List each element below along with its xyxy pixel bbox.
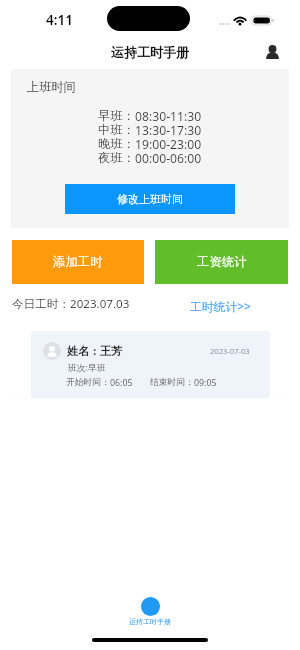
staticText: 13:30-17:30: [135, 122, 202, 136]
staticText: 4:11: [46, 11, 73, 29]
staticText: 运持工时手册: [129, 617, 171, 626]
staticText: 上班时间: [27, 79, 76, 94]
staticText: 09:05: [194, 377, 217, 389]
staticText: 08:30-11:30: [135, 108, 202, 122]
staticText: 06:05: [110, 377, 133, 389]
staticText: 工资统计: [197, 254, 247, 270]
staticText: 开始时间：: [66, 377, 110, 388]
staticText: 2023-07-03: [210, 346, 250, 356]
staticText: 结束时间：: [150, 377, 194, 388]
button[interactable]: 工时统计>>: [190, 298, 251, 314]
staticText: 19:00-23:00: [135, 136, 202, 150]
staticText: 班次:早班: [68, 362, 106, 374]
button[interactable]: 姓名：王芳: [31, 331, 270, 398]
staticText: 00:00-06:00: [135, 150, 202, 164]
staticText: 修改上班时间: [117, 192, 183, 206]
staticText: 夜班：: [98, 150, 135, 164]
staticText: 运持工时手册: [111, 44, 189, 60]
staticText: 早班：: [98, 108, 135, 122]
button[interactable]: Profile: [259, 39, 285, 65]
staticText: 今日工时：: [12, 297, 70, 312]
staticText: 工时统计>>: [190, 298, 251, 314]
staticText: 中班：: [98, 122, 135, 136]
button[interactable]: 工资统计: [155, 240, 288, 284]
button[interactable]: 添加工时: [12, 240, 144, 284]
staticText: 添加工时: [53, 254, 103, 270]
staticText: 2023.07.03: [70, 296, 130, 312]
button[interactable]: 修改上班时间: [65, 184, 235, 214]
staticText: 晚班：: [98, 136, 135, 150]
staticText: 姓名：王芳: [67, 344, 122, 358]
button[interactable]: 运持工时手册: [105, 592, 195, 628]
